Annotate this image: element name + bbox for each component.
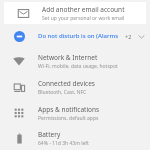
button[interactable]: Add another email account: [4, 2, 146, 24]
button[interactable]: Apps & notifications: [0, 100, 150, 126]
button[interactable]: Battery: [0, 126, 150, 150]
staticText: Add another email account: [42, 5, 125, 14]
staticText: 64% - 11d 3h 43m left: [38, 140, 89, 147]
staticText: Apps & notifications: [38, 105, 100, 114]
staticText: Connected devices: [38, 79, 95, 88]
button[interactable]: Expand: [132, 27, 150, 45]
staticText: Set up your personal or work email: [42, 15, 125, 22]
staticText: +2: [125, 33, 132, 40]
button[interactable]: Connected devices: [0, 74, 150, 100]
staticText: Do not disturb is on (Alarms only): [38, 32, 125, 40]
staticText: Bluetooth, Cast, NFC: [38, 89, 87, 96]
button[interactable]: Network & Internet: [0, 48, 150, 74]
staticText: Network & Internet: [38, 53, 98, 62]
button[interactable]: Do not disturb is on (Alarms only): [0, 24, 150, 48]
staticText: Permissions, default apps: [38, 115, 99, 122]
staticText: Battery: [38, 130, 61, 139]
staticText: Wi-Fi, mobile, data usage, hotspot: [38, 63, 118, 70]
